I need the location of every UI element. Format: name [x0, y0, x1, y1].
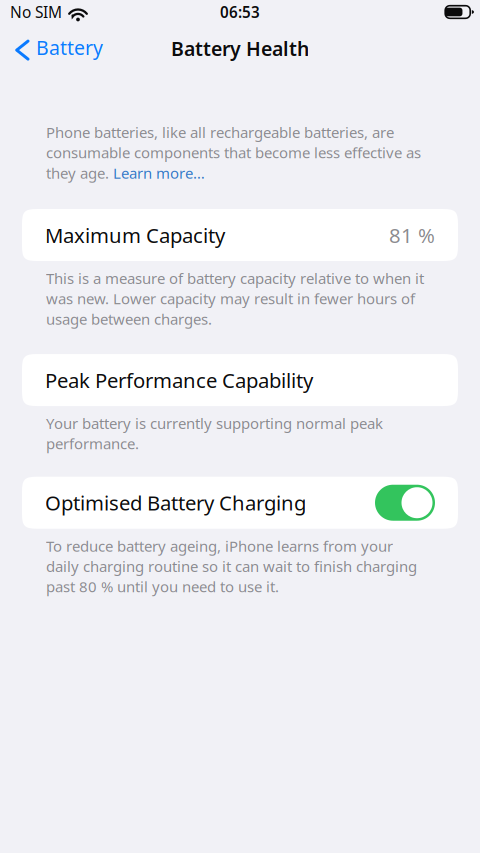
staticText: Your battery is currently supporting nor…	[46, 413, 383, 454]
staticText: Optimised Battery Charging	[45, 489, 306, 516]
staticText: Battery	[36, 34, 103, 61]
button[interactable]: Peak Performance Capability	[0, 354, 480, 406]
staticText: No SIM	[10, 1, 62, 23]
staticText: To reduce battery ageing, iPhone learns …	[46, 536, 417, 597]
staticText: 06:53	[220, 2, 260, 22]
button[interactable]: Battery	[0, 30, 115, 70]
staticText: Peak Performance Capability	[45, 366, 313, 394]
staticText: Battery Health	[171, 35, 309, 62]
staticText: Phone batteries, like all rechargeable b…	[46, 122, 421, 183]
button[interactable]: Maximum Capacity	[0, 209, 480, 261]
staticText: 81 %	[389, 221, 435, 249]
button[interactable]: Optimised Battery Charging	[375, 485, 435, 521]
staticText: Maximum Capacity	[45, 221, 225, 249]
staticText: This is a measure of battery capacity re…	[46, 268, 424, 329]
